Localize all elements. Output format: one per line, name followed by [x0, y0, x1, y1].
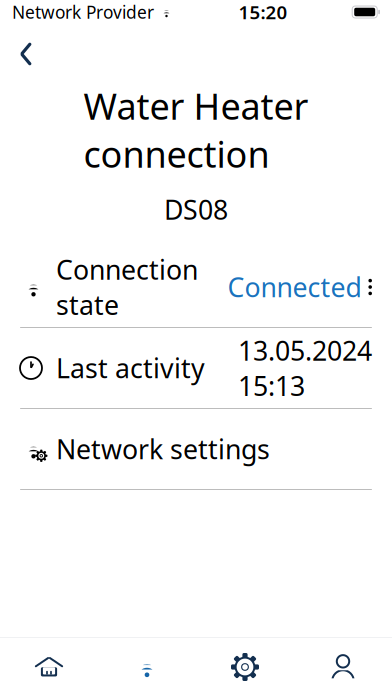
staticText: Connection state	[56, 252, 198, 322]
button[interactable]: Profile	[294, 638, 392, 696]
staticText: 13.05.2024 15:13	[238, 333, 372, 403]
staticText: Network Provider	[12, 0, 154, 23]
staticText: Network settings	[56, 431, 270, 467]
button[interactable]: Settings	[196, 638, 294, 696]
staticText: DS08	[164, 192, 228, 227]
button[interactable]: Network settings	[0, 409, 392, 490]
button[interactable]: Last activity	[0, 328, 392, 409]
staticText: 15:20	[239, 0, 288, 24]
staticText: Last activity	[56, 350, 205, 386]
button[interactable]: Connection state	[0, 247, 392, 328]
staticText: Connected	[227, 269, 361, 305]
button[interactable]: Back	[4, 34, 48, 74]
button[interactable]: Home	[0, 638, 98, 696]
button[interactable]: Network	[98, 638, 196, 696]
staticText: Water Heater connection	[83, 82, 308, 178]
